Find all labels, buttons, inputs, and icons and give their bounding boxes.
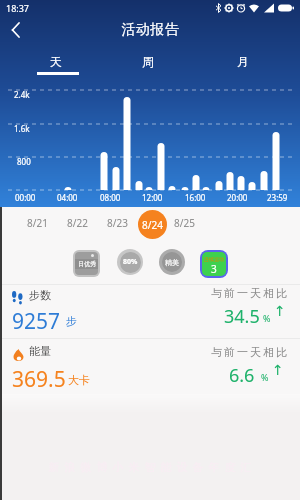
- button[interactable]: 8/21: [19, 214, 55, 232]
- button[interactable]: 连续运动: [200, 250, 228, 278]
- staticText: 16:00: [185, 192, 206, 203]
- staticText: ↑: [272, 362, 284, 378]
- staticText: %: [263, 312, 271, 324]
- staticText: 连续运动: [204, 256, 224, 262]
- staticText: 12:00: [142, 192, 163, 203]
- button[interactable]: 周: [113, 49, 183, 73]
- staticText: 精美: [165, 258, 179, 267]
- staticText: 18:37: [6, 2, 30, 14]
- button[interactable]: 月: [208, 49, 278, 73]
- staticText: 00:00: [15, 192, 36, 203]
- staticText: 34.5: [224, 304, 260, 329]
- staticText: 9257: [12, 307, 61, 336]
- staticText: 369.5: [12, 365, 66, 394]
- staticText: 8/24: [142, 218, 163, 232]
- staticText: 与前一天相比: [210, 345, 288, 359]
- staticText: 大卡: [68, 373, 90, 387]
- button[interactable]: 8/22: [59, 214, 95, 232]
- staticText: 8/21: [27, 216, 48, 230]
- staticText: 1.6k: [14, 123, 30, 134]
- staticText: 日优秀: [78, 260, 96, 268]
- staticText: 6.6: [229, 363, 255, 388]
- staticText: 活动报告: [121, 21, 179, 39]
- button[interactable]: [0, 339, 300, 394]
- staticText: 3: [211, 262, 217, 274]
- staticText: 80%: [123, 257, 138, 267]
- staticText: 8/22: [67, 216, 88, 230]
- staticText: 8/23: [107, 216, 128, 230]
- staticText: 步数: [29, 288, 51, 302]
- staticText: 步: [66, 314, 77, 328]
- button[interactable]: 8/25: [166, 214, 202, 232]
- staticText: 800: [17, 156, 31, 167]
- button[interactable]: 8/23: [99, 214, 135, 232]
- staticText: %: [261, 371, 269, 383]
- button[interactable]: [8, 18, 32, 42]
- staticText: 20:00: [227, 192, 248, 203]
- staticText: 周: [142, 54, 154, 69]
- staticText: ↑: [274, 303, 286, 319]
- button[interactable]: 80%: [117, 249, 143, 275]
- staticText: 08:00: [100, 192, 121, 203]
- staticText: 8/25: [174, 216, 195, 230]
- button[interactable]: 精美: [159, 249, 185, 275]
- staticText: 与前一天相比: [210, 286, 288, 300]
- staticText: 月: [237, 54, 249, 69]
- staticText: 能量: [29, 344, 51, 358]
- staticText: 天: [50, 54, 62, 69]
- staticText: 04:00: [57, 192, 78, 203]
- staticText: 2.4k: [14, 89, 30, 100]
- button[interactable]: 8/24: [138, 210, 167, 239]
- staticText: 23:59: [267, 192, 288, 203]
- button[interactable]: 天: [21, 49, 91, 73]
- button[interactable]: 日优秀: [73, 250, 100, 277]
- button[interactable]: [0, 285, 300, 338]
